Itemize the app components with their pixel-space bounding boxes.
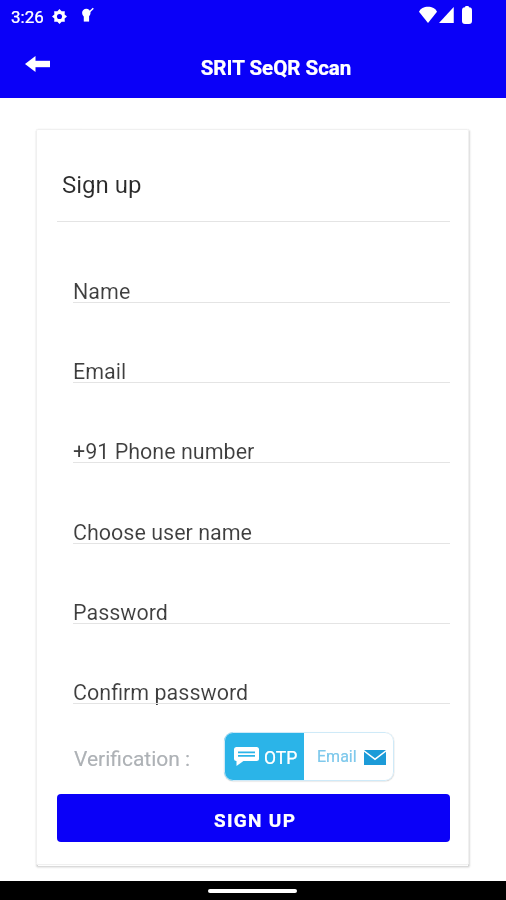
button[interactable]: SIGN UP [57, 794, 450, 842]
staticText: Password [73, 600, 168, 625]
staticText: SRIT SeQR Scan [46, 56, 506, 80]
button[interactable]: Choose user name [73, 501, 450, 544]
staticText: Email [317, 747, 357, 766]
staticText: Name [73, 279, 131, 304]
staticText: 3:26 [11, 7, 44, 27]
staticText: Verification : [74, 747, 191, 772]
button[interactable]: OTP [224, 732, 304, 781]
staticText: SIGN UP [214, 809, 297, 831]
button[interactable]: Confirm password [73, 661, 450, 704]
staticText: +91 Phone number [73, 439, 255, 464]
button[interactable]: Password [73, 581, 450, 624]
button[interactable]: Back [13, 40, 61, 88]
button[interactable]: Name [73, 260, 450, 303]
staticText: Sign up [62, 171, 142, 199]
staticText: Confirm password [73, 680, 249, 705]
staticText: Email [73, 359, 127, 384]
button[interactable]: +91 Phone number [73, 420, 450, 463]
button[interactable]: Email [73, 340, 450, 383]
staticText: OTP [264, 748, 298, 769]
button[interactable]: Email [304, 732, 394, 781]
staticText: Choose user name [73, 520, 252, 545]
